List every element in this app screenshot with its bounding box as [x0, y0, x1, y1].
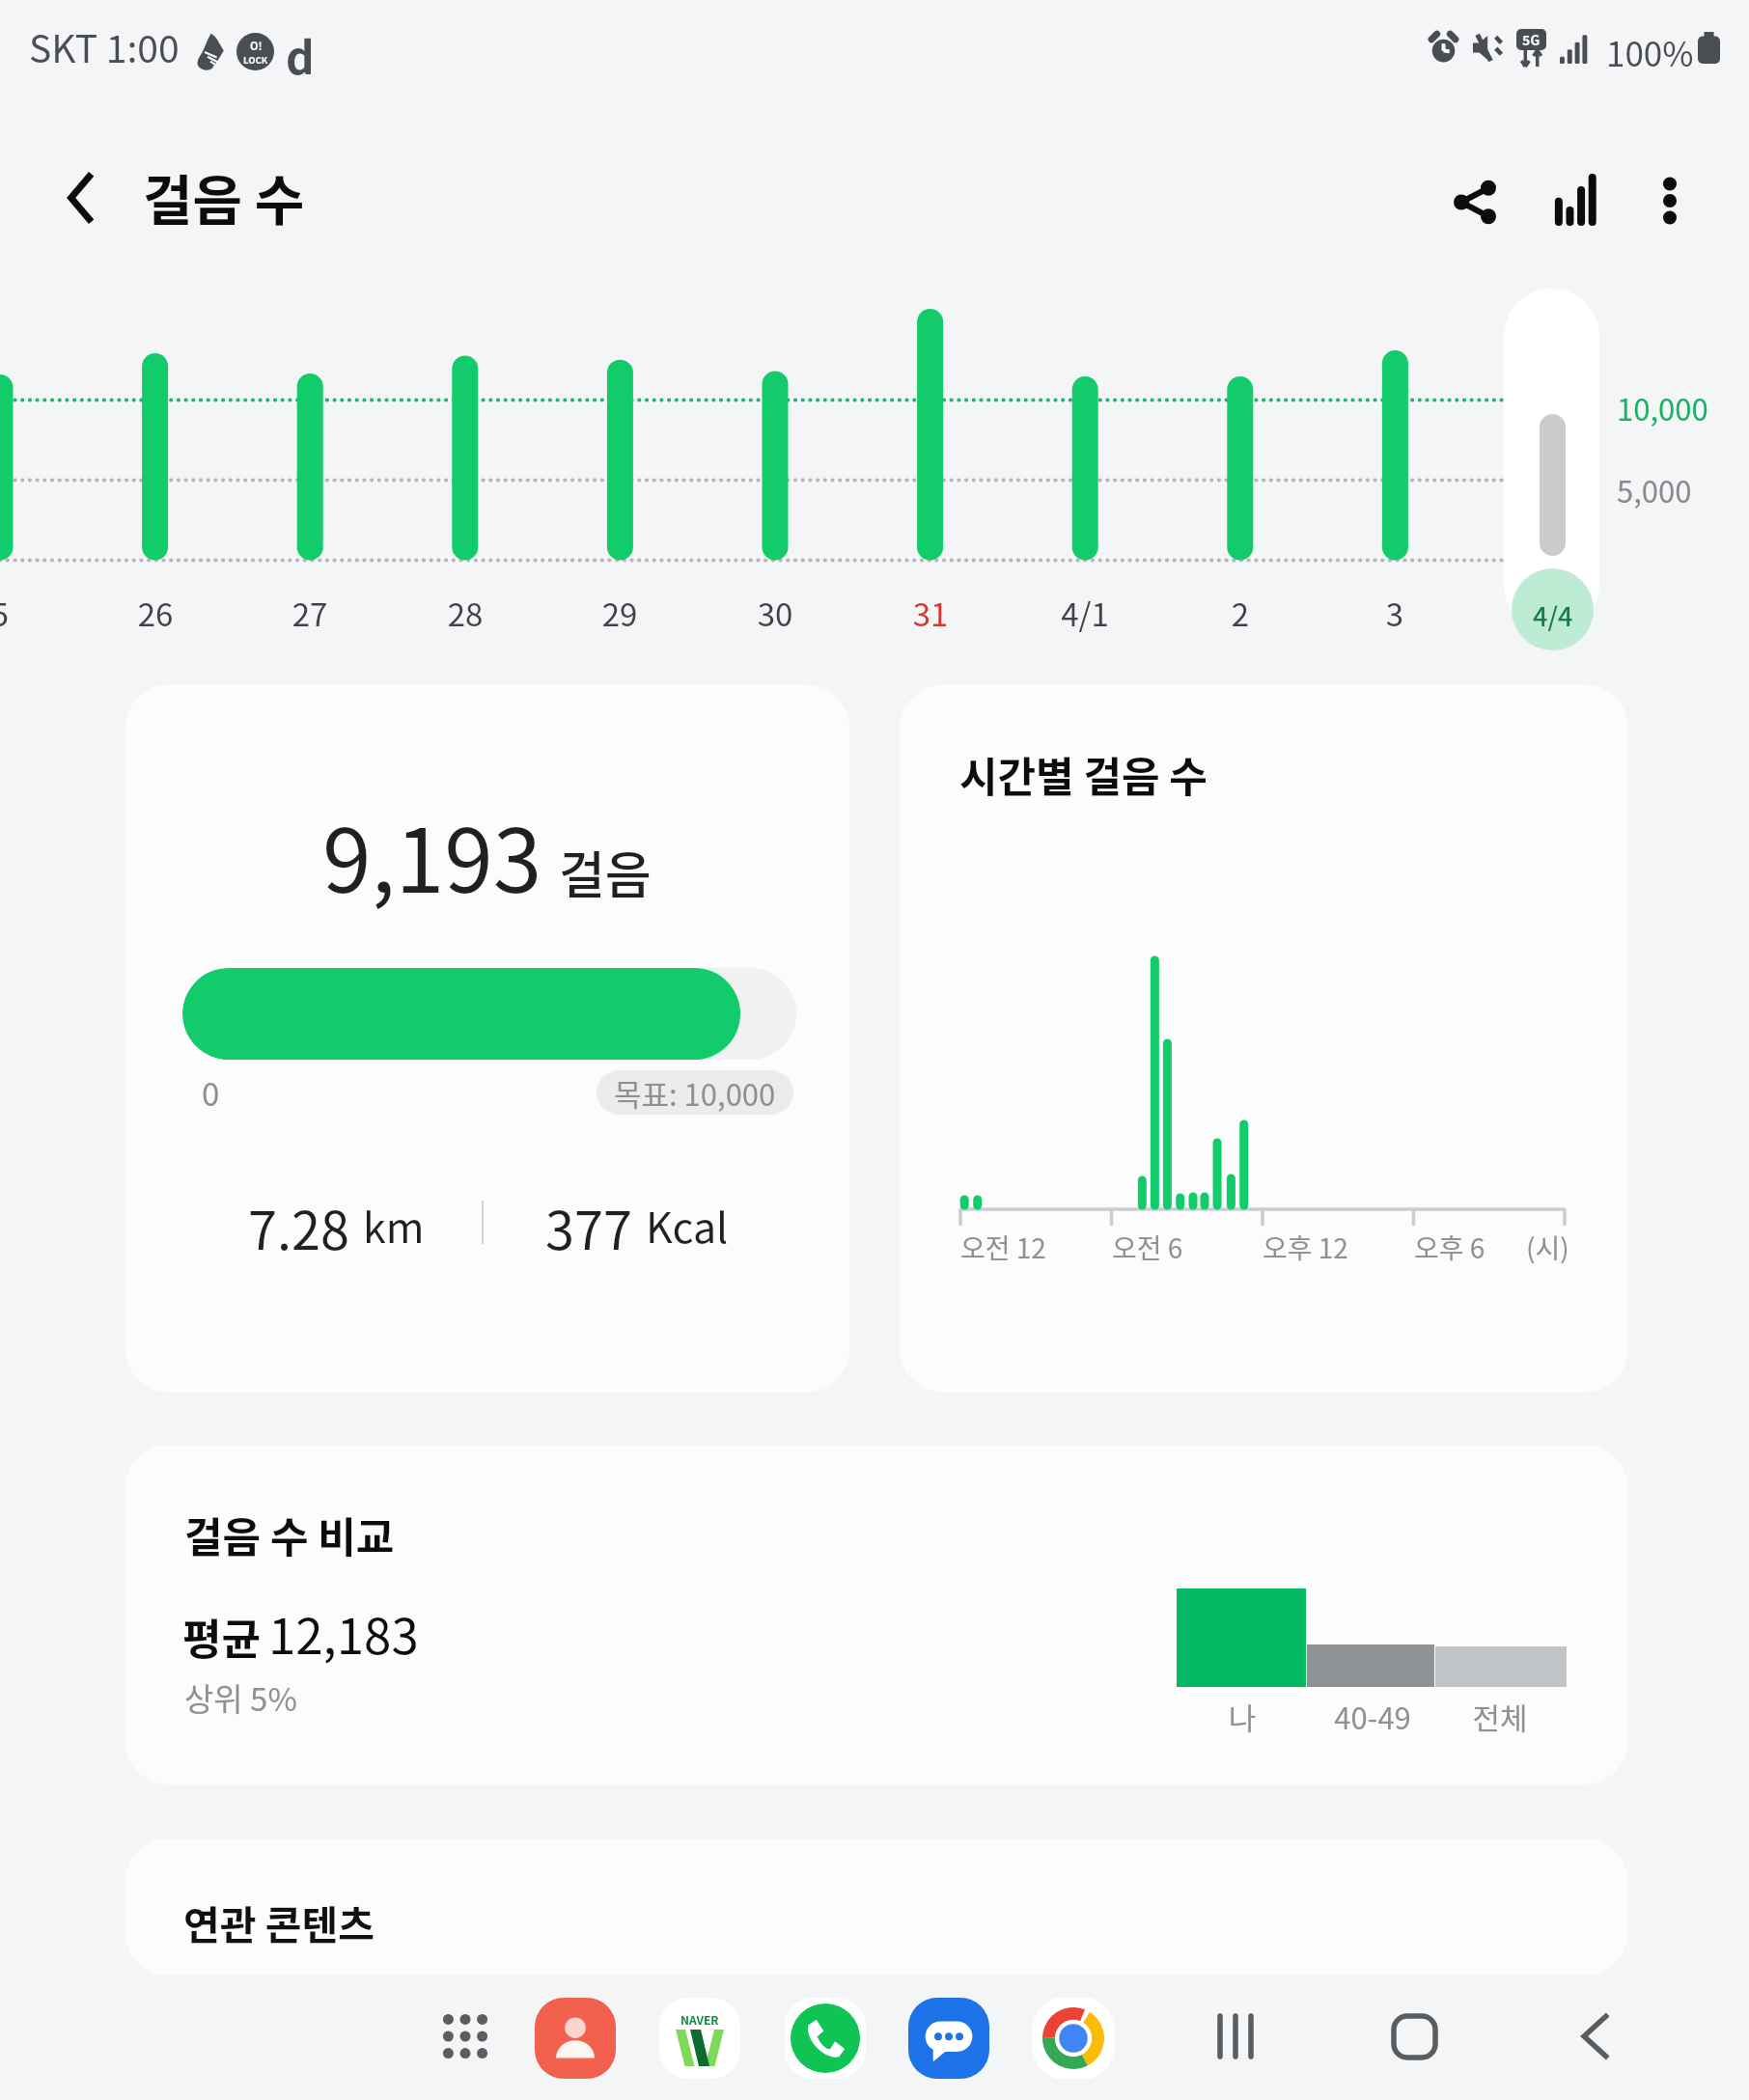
- button[interactable]: Home: [1364, 1986, 1464, 2086]
- staticText: (시): [1526, 1228, 1569, 1267]
- staticText: 상위 5%: [184, 1674, 297, 1721]
- staticText: 오후 6: [1414, 1228, 1485, 1267]
- button[interactable]: Apps: [415, 1986, 515, 2086]
- button[interactable]: Back: [41, 145, 330, 248]
- staticText: SKT 1:00: [29, 19, 180, 73]
- staticText: 31: [853, 590, 1008, 636]
- staticText: NAVER: [680, 2011, 719, 2028]
- staticText: 30: [698, 590, 852, 636]
- staticText: 26: [78, 590, 233, 636]
- staticText: 40-49: [1295, 1695, 1450, 1738]
- staticText: 시간별 걸음 수: [959, 744, 1208, 804]
- button[interactable]: Share: [1422, 149, 1528, 255]
- staticText: 걸음: [559, 836, 652, 908]
- button[interactable]: More options: [1617, 148, 1723, 254]
- staticText: 100%: [1606, 27, 1694, 76]
- staticText: 연관 콘텐츠: [183, 1893, 375, 1950]
- staticText: 5: [0, 590, 77, 636]
- staticText: 10,000: [1617, 386, 1708, 429]
- staticText: 0: [202, 1069, 220, 1116]
- staticText: 평균: [182, 1606, 261, 1668]
- staticText: 목표: 10,000: [614, 1071, 776, 1115]
- staticText: 오전 6: [1112, 1228, 1183, 1267]
- staticText: 29: [542, 590, 697, 636]
- staticText: 오후 12: [1263, 1228, 1348, 1267]
- button[interactable]: Back: [1544, 1986, 1645, 2086]
- staticText: d: [286, 23, 315, 88]
- button[interactable]: 9,193: [125, 684, 849, 1393]
- staticText: 4/1: [1008, 590, 1162, 636]
- staticText: 5G: [1522, 30, 1541, 49]
- staticText: 3: [1318, 590, 1472, 636]
- staticText: 7.28: [248, 1189, 349, 1264]
- button[interactable]: 시간별 걸음 수: [900, 684, 1628, 1393]
- button[interactable]: Recents: [1185, 1986, 1286, 2086]
- staticText: 오전 12: [960, 1228, 1046, 1267]
- button[interactable]: Trends: [1522, 147, 1628, 253]
- staticText: LOCK: [243, 53, 268, 67]
- staticText: 5,000: [1617, 468, 1692, 511]
- button[interactable]: 연관 콘텐츠: [125, 1838, 1628, 1976]
- staticText: 377: [545, 1189, 632, 1264]
- staticText: 12,183: [268, 1597, 419, 1669]
- button[interactable]: Phone: [785, 1998, 866, 2079]
- staticText: 나: [1165, 1695, 1319, 1738]
- staticText: O!: [250, 38, 263, 53]
- staticText: 4/4: [1533, 596, 1573, 634]
- staticText: 걸음 수 비교: [184, 1505, 395, 1564]
- button[interactable]: [1504, 289, 1599, 633]
- staticText: 걸음 수: [143, 157, 305, 235]
- staticText: 27: [233, 590, 387, 636]
- button[interactable]: Naver: [659, 1998, 740, 2079]
- other: Back: [68, 174, 93, 222]
- staticText: 28: [388, 590, 542, 636]
- staticText: 2: [1163, 590, 1318, 636]
- staticText: 전체: [1423, 1695, 1577, 1738]
- staticText: Kcal: [646, 1195, 729, 1255]
- button[interactable]: Contacts: [535, 1998, 616, 2079]
- staticText: 9,193: [322, 790, 542, 918]
- button[interactable]: Messages: [908, 1998, 989, 2079]
- button[interactable]: 걸음 수 비교: [125, 1445, 1628, 1784]
- button[interactable]: Chrome: [1033, 1998, 1114, 2079]
- staticText: km: [363, 1195, 425, 1255]
